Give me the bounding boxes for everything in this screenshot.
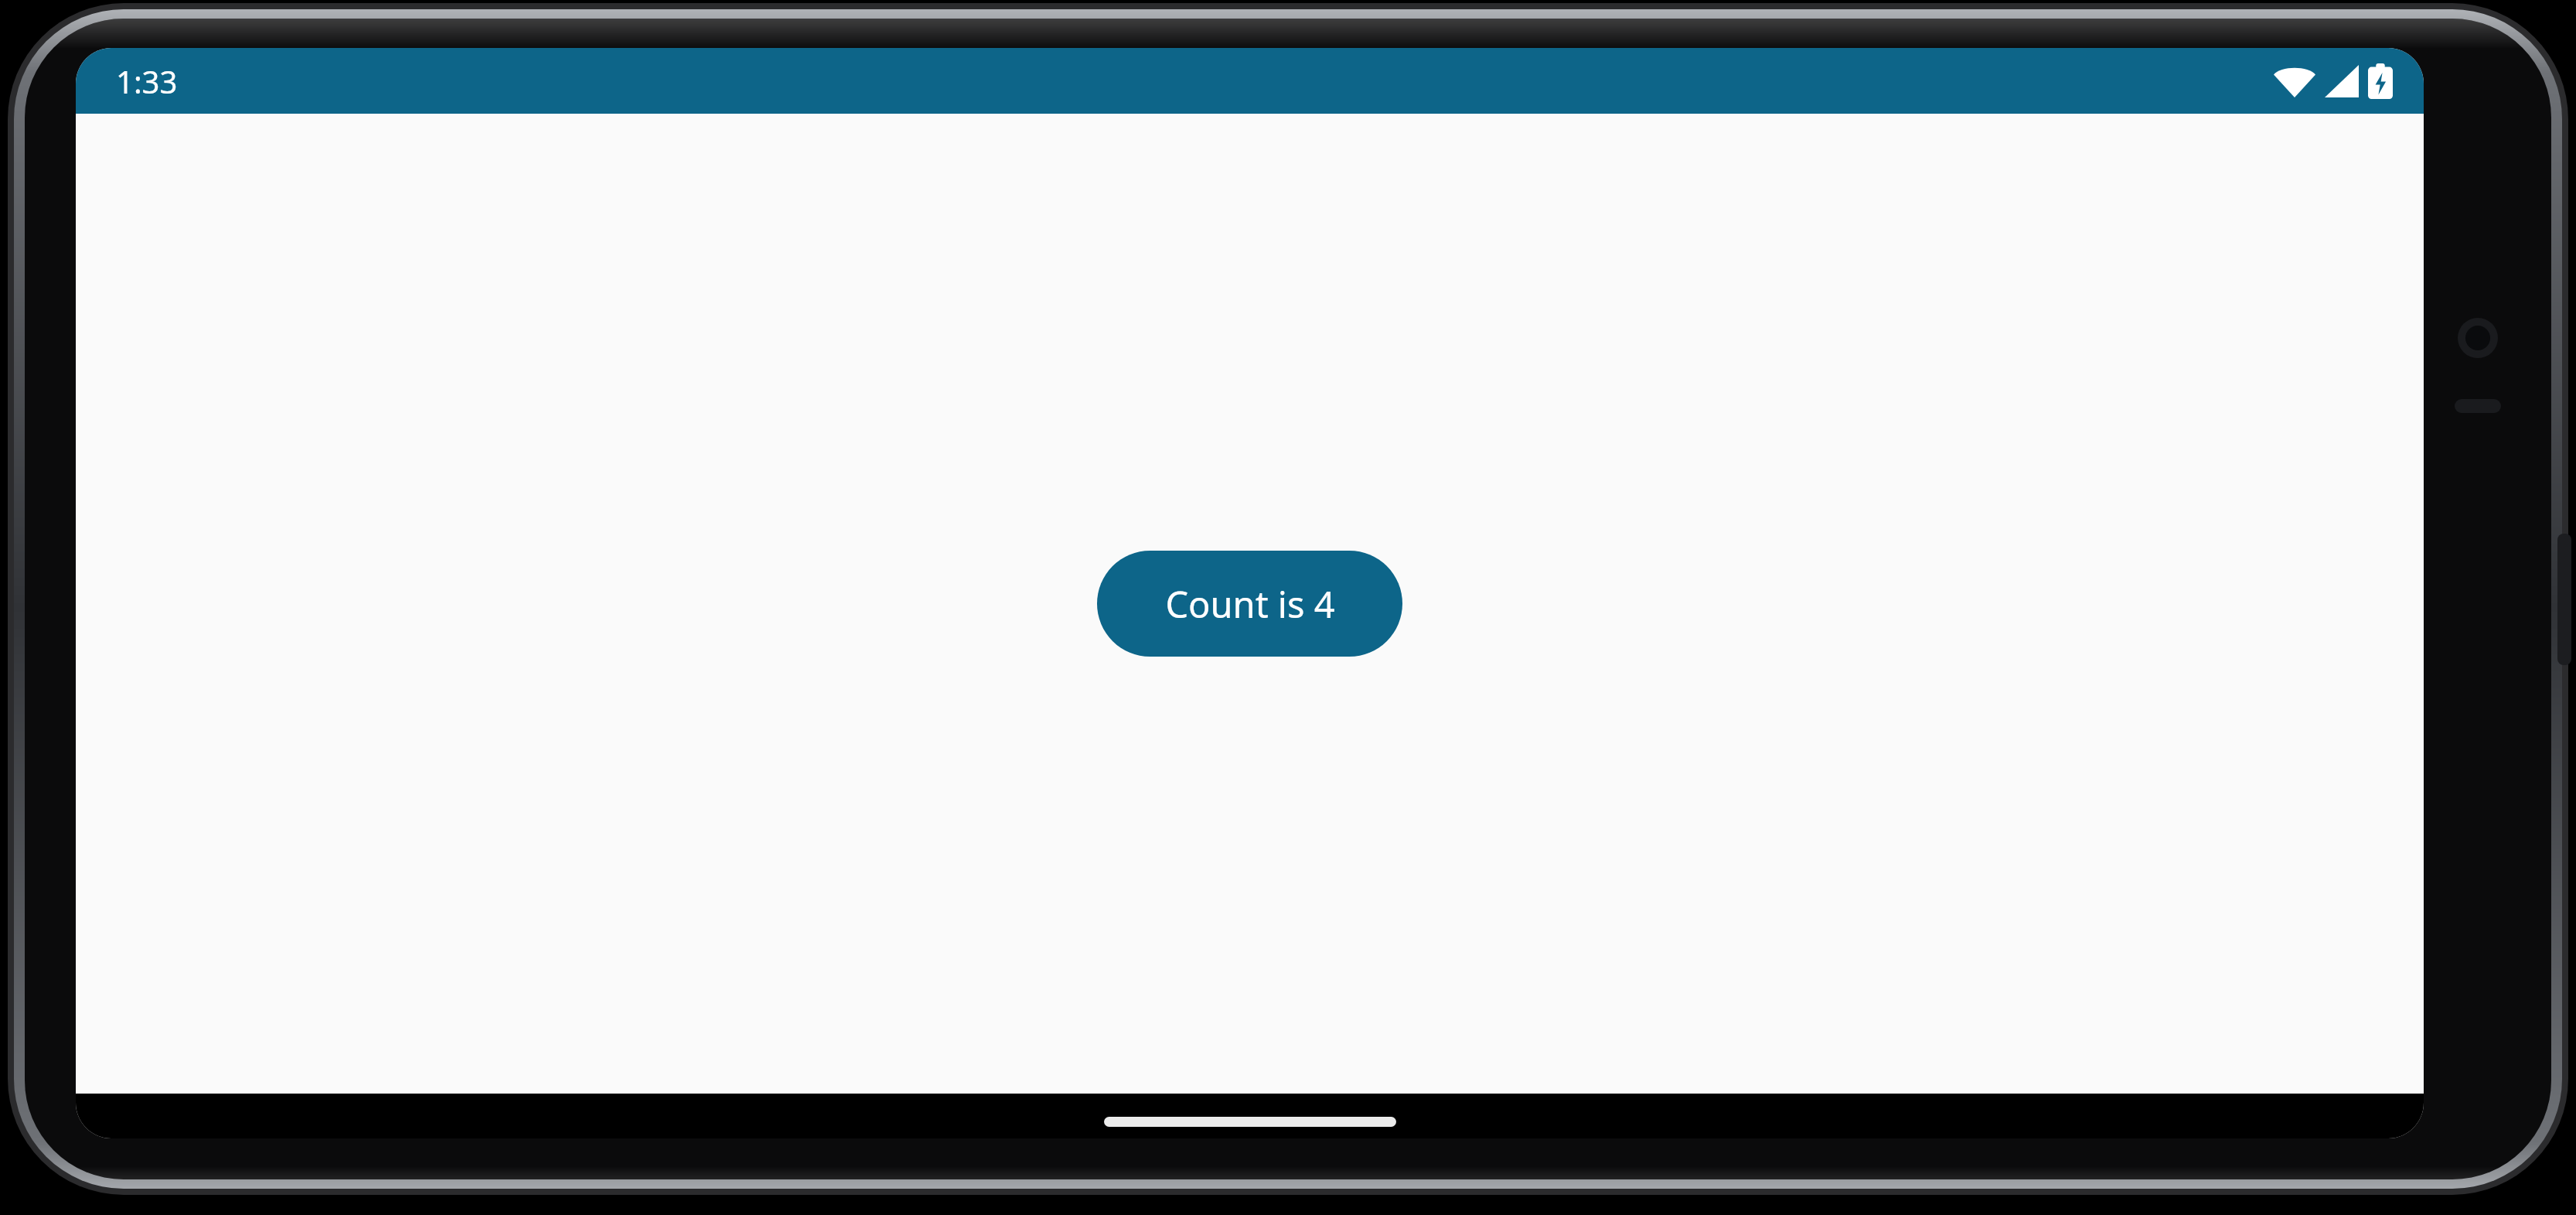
staticText: Count is 4: [1165, 579, 1335, 629]
button[interactable]: Home: [1104, 1117, 1396, 1127]
button[interactable]: Count is 4: [1097, 551, 1402, 657]
staticText: 1:33: [116, 60, 178, 102]
